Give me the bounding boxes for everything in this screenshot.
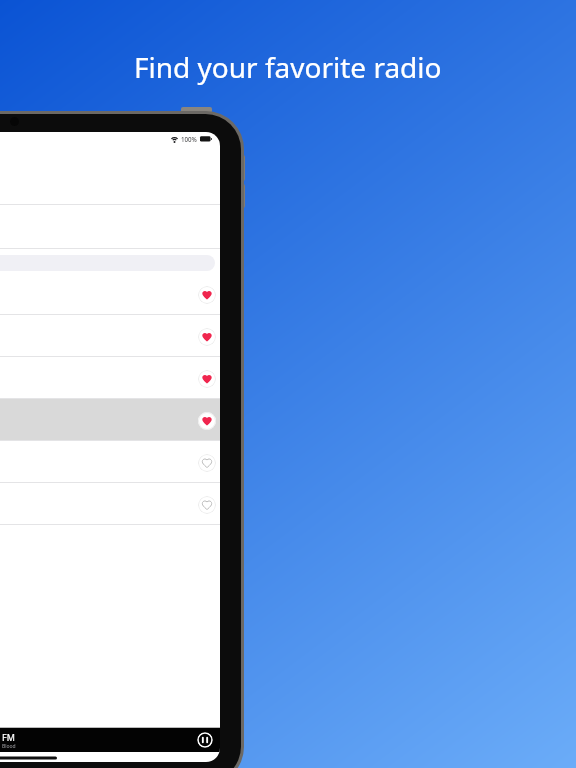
staticText: Find your favorite radio [134, 48, 442, 86]
staticText: FM [2, 731, 15, 743]
staticText: 100% [181, 135, 197, 143]
button[interactable] [0, 315, 220, 357]
button[interactable] [0, 273, 220, 315]
button[interactable] [198, 412, 216, 430]
button[interactable] [198, 286, 216, 304]
button[interactable] [0, 357, 220, 399]
staticText: Blood [2, 743, 16, 750]
button[interactable] [197, 732, 213, 748]
button[interactable] [198, 370, 216, 388]
button[interactable] [0, 441, 220, 483]
button[interactable] [198, 328, 216, 346]
button[interactable] [0, 483, 220, 525]
button[interactable] [198, 496, 216, 514]
button[interactable] [198, 454, 216, 472]
button[interactable] [0, 399, 220, 441]
